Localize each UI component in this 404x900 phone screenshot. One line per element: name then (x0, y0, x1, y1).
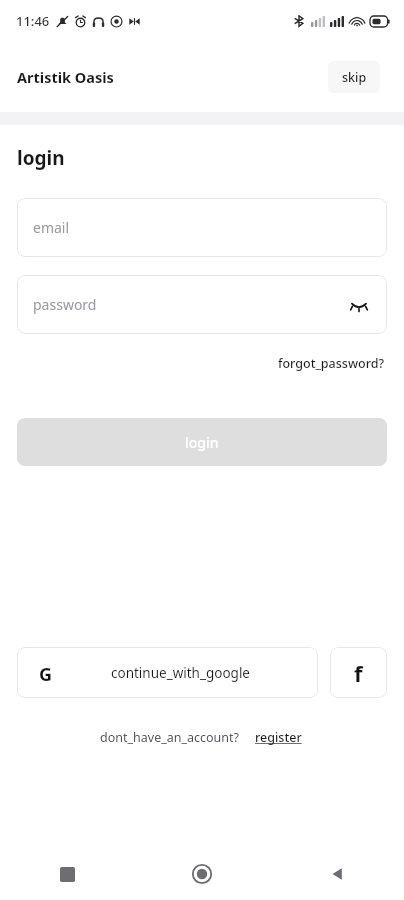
button[interactable]: Back (269, 848, 404, 900)
button[interactable]: Show password (345, 291, 373, 319)
staticText: email (33, 218, 70, 237)
button[interactable]: email (17, 198, 387, 257)
staticText: 11:46 (16, 12, 50, 30)
staticText: dont_have_an_account? (100, 729, 239, 746)
staticText: skip (342, 69, 367, 86)
staticText: login (17, 145, 65, 171)
button[interactable]: Continue with Facebook (330, 647, 387, 698)
staticText: password (33, 295, 97, 314)
staticText: Artistik Oasis (17, 67, 114, 87)
button[interactable]: Home (134, 848, 269, 900)
button[interactable]: login (17, 418, 387, 466)
button[interactable]: Recent apps (0, 848, 134, 900)
staticText: f (354, 658, 363, 688)
button[interactable]: forgot_password? (276, 352, 387, 375)
staticText: forgot_password? (278, 355, 385, 372)
staticText: continue_with_google (111, 664, 250, 682)
button[interactable]: G (17, 647, 318, 698)
button[interactable]: skip (328, 61, 380, 93)
staticText: register (255, 729, 302, 746)
button[interactable]: register (253, 726, 304, 749)
staticText: G (39, 662, 53, 684)
button[interactable]: password (17, 275, 387, 334)
staticText: login (185, 433, 219, 452)
